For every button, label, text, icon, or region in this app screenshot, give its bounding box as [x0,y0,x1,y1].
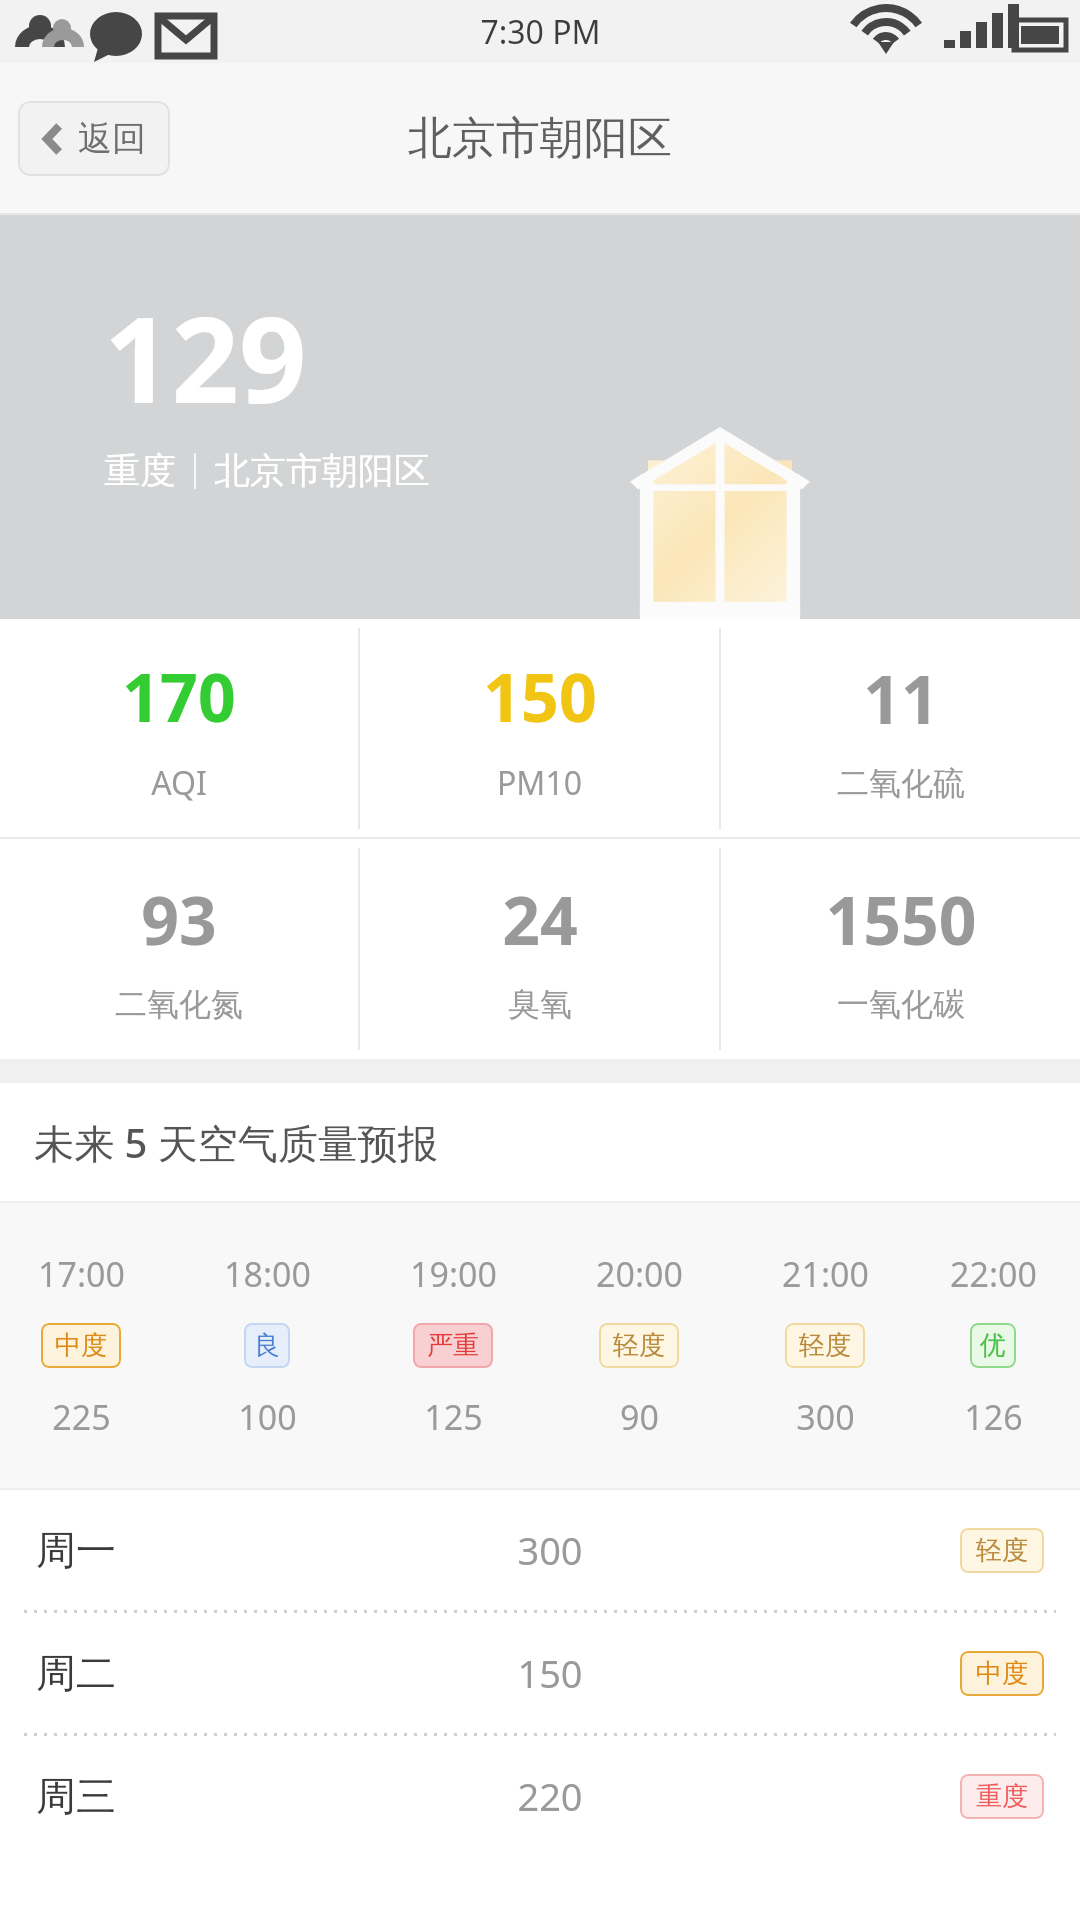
staticText: 严重 [427,1329,479,1362]
staticText: 重度 [104,448,176,493]
button[interactable]: 150 [360,619,719,837]
button[interactable]: 18:00 [174,1203,360,1488]
button[interactable]: 20:00 [546,1203,732,1488]
staticText: 优 [980,1329,1006,1362]
staticText: 未来 5 天空气质量预报 [34,1115,438,1170]
staticText: 北京市朝阳区 [408,111,672,166]
staticText: 24 [502,874,578,964]
staticText: 周一 [36,1525,116,1575]
staticText: 300 [517,1524,583,1576]
staticText: 1550 [825,874,977,964]
button[interactable]: 返回 [18,101,170,176]
staticText: 7:30 PM [480,10,601,54]
staticText: 18:00 [224,1251,311,1297]
staticText: 二氧化硫 [837,763,965,803]
staticText: 一氧化碳 [837,984,965,1024]
button[interactable]: 周一 [0,1490,1080,1610]
staticText: 125 [424,1394,483,1440]
staticText: 93 [141,874,217,964]
staticText: 220 [517,1770,583,1822]
button[interactable]: 21:00 [732,1203,918,1488]
staticText: AQI [151,761,207,805]
button[interactable]: 1550 [721,839,1080,1059]
staticText: 126 [964,1394,1023,1440]
button[interactable]: 周二 [0,1613,1080,1733]
staticText: 170 [122,651,236,741]
button[interactable]: 周三 [0,1736,1080,1856]
button[interactable]: 22:00 [918,1203,1068,1488]
staticText: 90 [620,1394,659,1440]
staticText: 良 [254,1329,280,1362]
staticText: 返回 [78,117,146,160]
button[interactable]: 93 [0,839,358,1059]
button[interactable]: 17:00 [0,1203,174,1488]
staticText: 北京市朝阳区 [214,448,430,493]
button[interactable]: 170 [0,619,358,837]
staticText: PM10 [497,761,582,805]
staticText: 21:00 [782,1251,869,1297]
staticText: 周二 [36,1648,116,1698]
staticText: 20:00 [596,1251,683,1297]
staticText: 17:00 [38,1251,125,1297]
staticText: 129 [104,277,307,438]
staticText: 轻度 [799,1329,851,1362]
staticText: 150 [517,1647,583,1699]
button[interactable]: 24 [360,839,719,1059]
staticText: 150 [483,651,597,741]
staticText: 11 [863,653,939,743]
staticText: 轻度 [976,1534,1028,1567]
staticText: 臭氧 [508,984,572,1024]
button[interactable]: 11 [721,619,1080,837]
staticText: 周三 [36,1771,116,1821]
staticText: 二氧化氮 [115,984,243,1024]
staticText: 轻度 [613,1329,665,1362]
button[interactable]: 19:00 [360,1203,546,1488]
staticText: 225 [52,1394,111,1440]
staticText: 300 [796,1394,855,1440]
staticText: 中度 [55,1329,107,1362]
staticText: 重度 [976,1780,1028,1813]
staticText: 中度 [976,1657,1028,1690]
staticText: 100 [238,1394,297,1440]
staticText: 19:00 [410,1251,497,1297]
staticText: 22:00 [950,1251,1037,1297]
